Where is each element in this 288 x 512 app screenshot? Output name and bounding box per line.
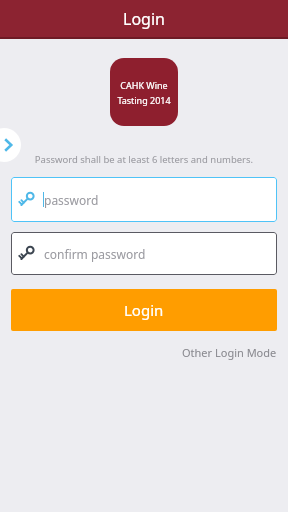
- staticText: password: [44, 192, 99, 208]
- button[interactable]: confirm password: [11, 232, 277, 275]
- button[interactable]: Other Login Mode: [171, 343, 288, 362]
- button[interactable]: Login: [11, 289, 277, 331]
- staticText: confirm password: [44, 246, 146, 262]
- staticText: Other Login Mode: [182, 345, 277, 360]
- button[interactable]: password: [11, 177, 277, 222]
- staticText: Password shall be at least 6 letters and…: [0, 153, 288, 166]
- button[interactable]: Open side panel: [0, 128, 21, 162]
- staticText: Login: [123, 8, 165, 30]
- staticText: Tasting 2014: [117, 94, 171, 106]
- staticText: CAHK Wine: [120, 79, 168, 91]
- staticText: Login: [124, 300, 164, 320]
